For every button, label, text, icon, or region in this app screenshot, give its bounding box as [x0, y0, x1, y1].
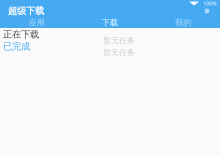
button[interactable]: More — [202, 6, 212, 16]
button[interactable]: 下载 — [73, 17, 147, 28]
button[interactable]: 应用 — [0, 17, 73, 28]
staticText: 已完成 — [3, 41, 30, 52]
staticText: 暂无任务 — [103, 36, 135, 45]
staticText: 下载 — [102, 18, 118, 27]
staticText: 超级下载 — [8, 5, 44, 17]
button[interactable]: 我的 — [147, 17, 220, 28]
staticText: 应用 — [29, 18, 45, 27]
staticText: 我的 — [175, 18, 191, 27]
staticText: 正在下载 — [3, 29, 39, 40]
staticText: 100% — [203, 0, 216, 7]
staticText: 暂无任务 — [103, 48, 135, 57]
